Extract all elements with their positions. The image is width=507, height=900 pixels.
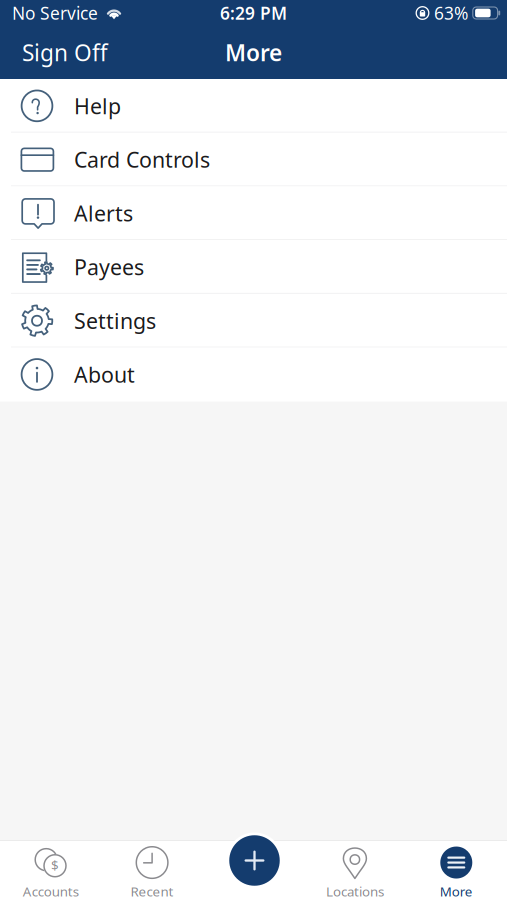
button[interactable]: Help (0, 79, 507, 133)
staticText: Settings (74, 307, 156, 335)
staticText: Locations (326, 882, 384, 900)
button[interactable]: Recent (101, 841, 203, 900)
button[interactable]: Settings (0, 294, 507, 348)
staticText: 6:29 PM (220, 1, 287, 24)
staticText: Recent (131, 882, 174, 900)
button[interactable]: Payees (0, 240, 507, 294)
staticText: Payees (74, 253, 144, 281)
button[interactable]: $ (0, 841, 101, 900)
staticText: Card Controls (74, 145, 210, 174)
button[interactable]: More (406, 841, 507, 900)
staticText: About (74, 360, 135, 389)
staticText: No Service (12, 1, 98, 24)
staticText: More (440, 882, 473, 900)
button[interactable]: Alerts (0, 186, 507, 240)
staticText: $ (51, 856, 59, 874)
button[interactable]: Sign Off (0, 28, 130, 77)
staticText: 63% (434, 1, 468, 24)
button[interactable]: About (0, 348, 507, 401)
staticText: Alerts (74, 199, 133, 227)
staticText: Sign Off (22, 37, 108, 67)
staticText: More (225, 37, 282, 67)
button[interactable]: Locations (304, 841, 406, 900)
button[interactable]: Add (226, 832, 282, 888)
staticText: Accounts (23, 882, 79, 900)
button[interactable]: Card Controls (0, 133, 507, 186)
staticText: Help (74, 92, 121, 120)
